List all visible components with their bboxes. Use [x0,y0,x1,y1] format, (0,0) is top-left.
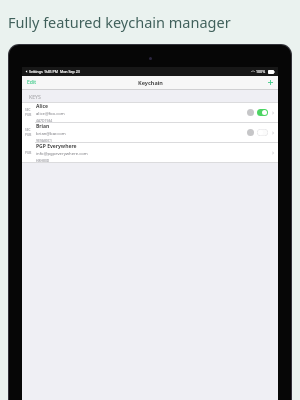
staticText: Alice [36,103,49,110]
staticText: 100% [256,69,266,74]
staticText: Edit [27,79,36,86]
staticText: Keychain [138,79,163,86]
staticText: PUB [25,133,32,137]
staticText: Settings 9:45 PM Mon Sep 23 [29,69,80,74]
staticText: SEC [25,128,31,132]
staticText: alice@foo.com [36,111,65,117]
staticText: H8H80D [36,158,50,162]
staticText: PGP Everywhere [36,143,77,150]
staticText: PUB [25,151,32,155]
staticText: PUB [25,113,32,117]
staticText: 4A7D1944 [36,118,53,122]
button[interactable]: Toggle Brian key [257,129,268,136]
staticText: Brian [36,123,50,130]
staticText: info@pgpeverywhere.com [36,151,88,157]
staticText: Fully featured keychain manager [8,12,231,32]
staticText: KEYS [29,93,41,100]
button[interactable]: SEC [22,123,278,142]
button[interactable]: PUB [22,143,278,162]
staticText: brian@bar.com [36,131,66,137]
button[interactable]: Edit [22,77,41,88]
staticText: 9E9A80C1 [36,138,52,142]
button[interactable]: SEC [22,103,278,122]
staticText: SEC [25,108,31,112]
button[interactable]: Toggle Alice key [257,109,268,116]
button[interactable]: Add key [263,78,278,87]
